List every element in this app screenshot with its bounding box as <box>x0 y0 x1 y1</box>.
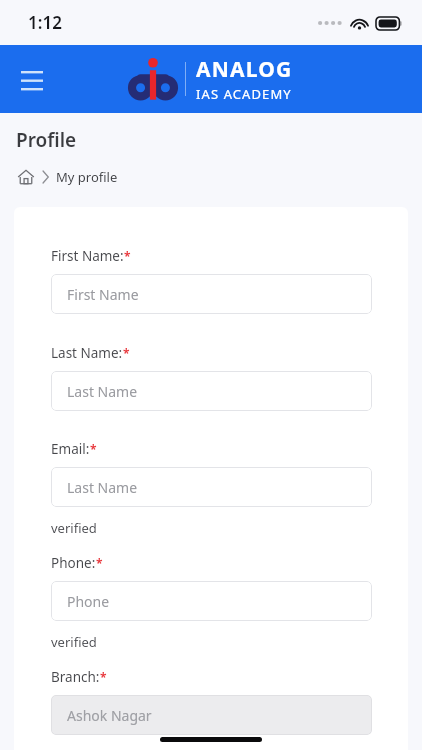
staticText: * <box>123 345 130 361</box>
button[interactable]: Phone <box>51 581 372 621</box>
staticText: Last Name <box>67 382 138 401</box>
staticText: Ashok Nagar <box>67 706 152 725</box>
staticText: verified <box>51 519 97 537</box>
staticText: 1:12 <box>28 11 62 34</box>
button[interactable]: Home <box>16 167 36 187</box>
staticText: * <box>100 669 107 685</box>
staticText: Branch: <box>51 668 100 686</box>
button[interactable]: Last Name <box>51 467 372 507</box>
button[interactable]: First Name <box>51 274 372 314</box>
staticText: verified <box>51 633 97 651</box>
staticText: * <box>90 441 97 457</box>
staticText: Profile <box>16 127 77 153</box>
staticText: ANALOG <box>196 55 293 84</box>
button[interactable]: My profile <box>56 168 118 186</box>
staticText: First Name <box>67 285 139 304</box>
staticText: Phone: <box>51 554 96 572</box>
staticText: My profile <box>56 168 118 186</box>
staticText: * <box>124 248 131 264</box>
staticText: Last Name: <box>51 344 123 362</box>
button[interactable]: Open navigation menu <box>12 59 52 99</box>
staticText: IAS ACADEMY <box>196 85 292 103</box>
staticText: Phone <box>67 592 110 611</box>
staticText: Last Name <box>67 478 138 497</box>
staticText: * <box>96 555 103 571</box>
staticText: Email: <box>51 440 90 458</box>
button[interactable]: Last Name <box>51 371 372 411</box>
staticText: First Name: <box>51 247 124 265</box>
button[interactable]: Ashok Nagar <box>51 695 372 735</box>
